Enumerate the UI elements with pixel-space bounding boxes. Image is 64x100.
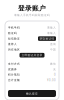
staticText: 手机号码 bbox=[8, 26, 20, 29]
staticText: ¥0.00 bbox=[47, 78, 56, 82]
staticText: 无 bbox=[53, 68, 56, 71]
staticText: 支付方式 bbox=[8, 62, 20, 66]
button[interactable]: 获取验证码 bbox=[38, 36, 56, 41]
staticText: 积分抵扣 bbox=[8, 73, 20, 76]
staticText: 登录账户 bbox=[18, 4, 46, 12]
button[interactable]: 手机号码 bbox=[5, 25, 59, 30]
button[interactable]: 立即验证并登录 bbox=[19, 53, 44, 57]
staticText: 立即验证并登录 bbox=[21, 54, 42, 57]
button[interactable]: 验证码 bbox=[5, 30, 59, 36]
staticText: 短信验证 bbox=[8, 37, 20, 40]
staticText: 请输入手机号码获取验证码 bbox=[14, 13, 50, 17]
button[interactable]: 合计金额 bbox=[5, 77, 59, 83]
staticText: 验证码 bbox=[8, 31, 17, 35]
staticText: 优惠券 bbox=[8, 68, 17, 71]
staticText: 推荐人 bbox=[8, 42, 17, 46]
staticText: 所在地区 bbox=[8, 48, 20, 51]
button[interactable]: 确认提交 bbox=[8, 90, 56, 97]
staticText: 中国 bbox=[50, 48, 56, 51]
button[interactable]: 所在地区 bbox=[5, 47, 59, 52]
staticText: 确认提交 bbox=[26, 92, 38, 95]
staticText: 合计金额 bbox=[8, 78, 20, 82]
button[interactable]: 推荐人 bbox=[5, 41, 59, 47]
staticText: 选填 bbox=[50, 42, 56, 46]
staticText: 微信 bbox=[50, 62, 56, 66]
button[interactable]: 积分抵扣 bbox=[5, 72, 59, 77]
staticText: 请输入 bbox=[47, 31, 56, 35]
staticText: 0 bbox=[54, 73, 56, 76]
button[interactable]: 优惠券 bbox=[5, 67, 59, 72]
staticText: 获取验证码 bbox=[39, 37, 54, 40]
staticText: 请输入 bbox=[47, 26, 56, 29]
button[interactable]: 支付方式 bbox=[5, 61, 59, 67]
